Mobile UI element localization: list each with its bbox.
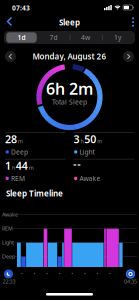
- staticText: 1y: [114, 33, 121, 42]
- staticText: 50: [84, 132, 96, 146]
- button[interactable]: Previous day: [5, 51, 16, 62]
- button[interactable]: Back: [4, 16, 14, 26]
- button[interactable]: 1d: [5, 31, 37, 44]
- staticText: 44: [16, 158, 28, 173]
- staticText: 7d: [49, 33, 57, 42]
- staticText: Light: [2, 239, 14, 246]
- staticText: m: [97, 138, 102, 145]
- button[interactable]: 1y: [101, 31, 133, 44]
- staticText: REM: [2, 225, 13, 232]
- staticText: Light: [79, 147, 94, 156]
- staticText: m: [18, 138, 23, 145]
- staticText: Total Sleep: [52, 97, 87, 106]
- staticText: 04:35: [124, 278, 137, 285]
- staticText: 1d: [17, 33, 25, 42]
- staticText: Sleep: [59, 17, 80, 28]
- staticText: m: [29, 164, 34, 171]
- staticText: 28: [5, 132, 17, 146]
- button[interactable]: 7d: [37, 31, 69, 44]
- staticText: Sleep Timeline: [6, 188, 63, 199]
- staticText: h: [80, 138, 83, 145]
- staticText: h: [12, 164, 15, 171]
- staticText: REM: [11, 174, 25, 183]
- staticText: 1: [5, 158, 11, 173]
- staticText: 6h 2m: [46, 78, 93, 99]
- staticText: 4w: [81, 33, 90, 42]
- staticText: 07:43: [12, 3, 30, 12]
- staticText: Monday, August 26: [32, 51, 106, 62]
- staticText: Deep: [11, 147, 28, 156]
- staticText: Awake: [79, 174, 100, 183]
- button[interactable]: Next day: [123, 51, 134, 62]
- staticText: Awake: [2, 211, 18, 218]
- staticText: Deep: [2, 253, 15, 260]
- staticText: 3: [73, 132, 79, 146]
- staticText: 22:33: [2, 278, 15, 285]
- button[interactable]: 4w: [69, 31, 101, 44]
- button[interactable]: More options: [129, 16, 137, 27]
